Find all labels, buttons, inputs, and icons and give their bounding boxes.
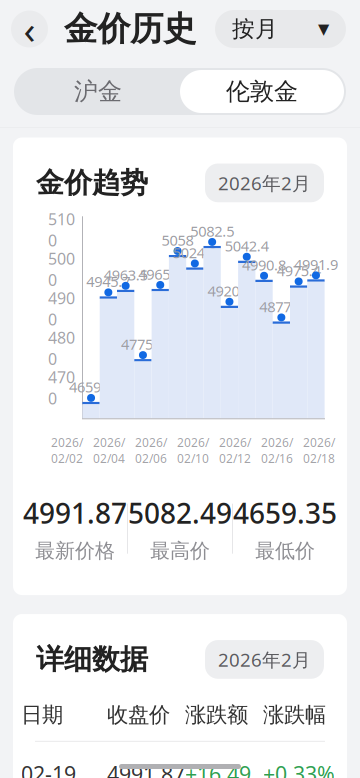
staticText: 5024.2 <box>173 243 217 262</box>
button[interactable]: 按月 <box>215 10 346 48</box>
staticText: 按月 <box>232 15 278 43</box>
staticText: 详细数据 <box>36 642 148 677</box>
staticText: 4659.4 <box>69 377 113 397</box>
staticText: 2026/02/10 <box>177 434 209 466</box>
staticText: 2026年2月 <box>218 170 311 195</box>
staticText: 4991.87 <box>107 760 185 778</box>
staticText: 4963.5 <box>104 265 148 285</box>
staticText: 4990.8 <box>242 255 286 274</box>
staticText: 4877.7 <box>259 297 303 316</box>
staticText: 4945.7 <box>86 272 130 291</box>
staticText: 5082.49 <box>128 494 232 531</box>
staticText: 伦敦金 <box>226 77 298 106</box>
staticText: 2026/02/02 <box>51 434 83 466</box>
staticText: 4991.87 <box>23 494 127 531</box>
staticText: 2026/02/16 <box>261 434 293 466</box>
staticText: 4991.9 <box>294 255 338 274</box>
button[interactable]: 伦敦金 <box>180 70 344 113</box>
staticText: ‹ <box>23 3 35 55</box>
button[interactable]: 返回 <box>11 10 48 47</box>
staticText: 金价趋势 <box>36 166 148 200</box>
staticText: 5100 <box>48 208 75 251</box>
staticText: 日期 <box>21 702 63 728</box>
staticText: 2026年2月 <box>218 647 311 672</box>
staticText: 4775.6 <box>121 334 165 354</box>
staticText: 涨跌额 <box>185 702 248 728</box>
staticText: +16.49 <box>185 760 251 778</box>
staticText: 5082.5 <box>190 221 234 241</box>
staticText: 金价历史 <box>64 8 196 49</box>
staticText: 02-19 <box>21 760 76 778</box>
button[interactable]: 沪金 <box>16 70 180 113</box>
staticText: 沪金 <box>74 77 122 106</box>
staticText: 收盘价 <box>107 702 170 728</box>
staticText: +0.33% <box>263 760 335 778</box>
staticText: 5000 <box>48 248 75 290</box>
staticText: 4659.35 <box>233 494 337 531</box>
staticText: 涨跌幅 <box>263 702 326 728</box>
button[interactable]: 02-19 <box>21 742 339 778</box>
staticText: 4900 <box>48 287 75 330</box>
staticText: 4800 <box>48 327 75 369</box>
staticText: 最低价 <box>255 538 315 563</box>
staticText: 2026/02/12 <box>219 434 251 466</box>
staticText: 4965.9 <box>138 264 182 284</box>
staticText: 4700 <box>48 366 75 409</box>
staticText: 2026/02/18 <box>303 434 335 466</box>
staticText: 最新价格 <box>35 538 115 563</box>
staticText: ▼ <box>318 21 329 37</box>
staticText: 4920.3 <box>207 281 251 300</box>
staticText: 5058 <box>161 230 193 250</box>
staticText: 4975.4 <box>277 261 321 280</box>
staticText: 2026/02/04 <box>93 434 125 466</box>
staticText: 2026/02/06 <box>135 434 167 466</box>
staticText: 5042.4 <box>225 236 269 255</box>
staticText: 最高价 <box>150 538 210 563</box>
